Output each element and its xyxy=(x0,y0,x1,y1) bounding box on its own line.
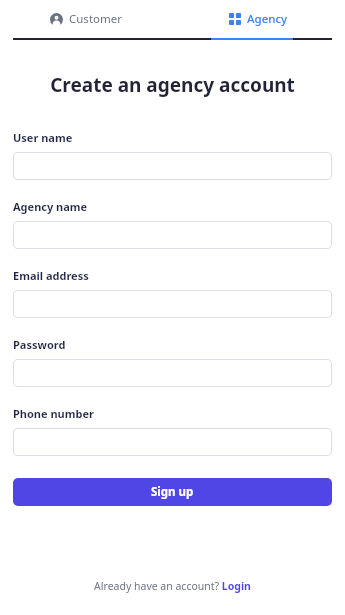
staticText: User name xyxy=(13,130,73,145)
staticText: Password xyxy=(13,337,66,352)
button[interactable]: Already have an account? Login xyxy=(0,579,345,593)
staticText: Already have an account? Login xyxy=(94,579,251,593)
button[interactable] xyxy=(13,221,332,249)
button[interactable] xyxy=(13,290,332,318)
staticText: Sign up xyxy=(151,484,194,500)
button[interactable]: Customer xyxy=(0,0,172,38)
staticText: Agency xyxy=(247,11,288,27)
staticText: Email address xyxy=(13,268,89,283)
button[interactable] xyxy=(13,428,332,456)
button[interactable]: Sign up xyxy=(13,478,332,506)
staticText: Agency name xyxy=(13,199,88,214)
button[interactable]: Agency xyxy=(172,0,345,38)
staticText: Phone number xyxy=(13,406,94,421)
button[interactable] xyxy=(13,152,332,180)
button[interactable] xyxy=(13,359,332,387)
other: Agency xyxy=(229,13,241,25)
staticText: Create an agency account xyxy=(0,72,345,98)
staticText: Customer xyxy=(69,11,122,27)
other: Customer xyxy=(50,13,63,26)
